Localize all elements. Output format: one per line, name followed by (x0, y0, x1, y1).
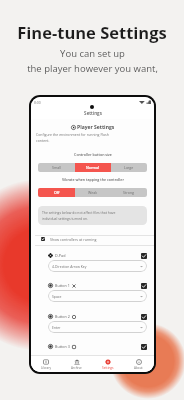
staticText: Enter (52, 325, 61, 330)
button[interactable]: D-Pad (48, 250, 147, 261)
staticText: Button 2 (55, 314, 70, 319)
button[interactable]: Off (38, 188, 75, 197)
button[interactable]: Archive (61, 356, 92, 372)
staticText: Off (54, 190, 60, 195)
staticText: 8:00 (34, 100, 41, 105)
staticText: The settings below do not affect files t… (42, 210, 116, 221)
staticText: Button 3 (55, 344, 70, 349)
staticText: You can set up (60, 47, 125, 60)
button[interactable]: Normal (75, 163, 111, 172)
staticText: Settings (102, 366, 114, 370)
button[interactable]: Library (31, 356, 61, 372)
button[interactable]: Button 3 (48, 341, 147, 352)
staticText: Archive (71, 366, 82, 370)
staticText: Configure the environment for running Fl… (36, 132, 109, 143)
staticText: Space (52, 294, 62, 299)
button[interactable]: Button 1 (48, 280, 147, 291)
button[interactable]: About (123, 356, 154, 372)
staticText: Player Settings (77, 124, 115, 131)
staticText: Controller button size (74, 152, 112, 157)
staticText: Fine-tune Settings (17, 21, 167, 43)
staticText: Weak (88, 190, 98, 195)
button[interactable]: Settings (92, 356, 123, 372)
staticText: Small (52, 165, 62, 170)
button[interactable]: Strong (111, 188, 147, 197)
staticText: Strong (123, 190, 135, 195)
staticText: Large (124, 165, 134, 170)
staticText: Normal (86, 165, 100, 170)
button[interactable]: 4-Direction Arrow Key (48, 260, 147, 272)
button[interactable]: Large (111, 163, 147, 172)
staticText: Show controllers at running (50, 237, 97, 242)
button[interactable]: Button 2 (48, 311, 147, 322)
button[interactable]: Small (38, 163, 75, 172)
staticText: 4-Direction Arrow Key (52, 264, 87, 269)
staticText: Vibrate when tapping the controller (62, 177, 124, 182)
staticText: Library (41, 366, 52, 370)
staticText: Button 1 (55, 283, 70, 288)
staticText: D-Pad (55, 253, 66, 258)
button[interactable]: Space (48, 290, 147, 302)
staticText: About (134, 366, 143, 370)
staticText: the player however you want, (27, 62, 158, 75)
button[interactable]: Enter (48, 321, 147, 333)
button[interactable]: Show controllers at running (41, 233, 154, 245)
staticText: Settings (84, 110, 102, 116)
button[interactable]: Weak (75, 188, 111, 197)
